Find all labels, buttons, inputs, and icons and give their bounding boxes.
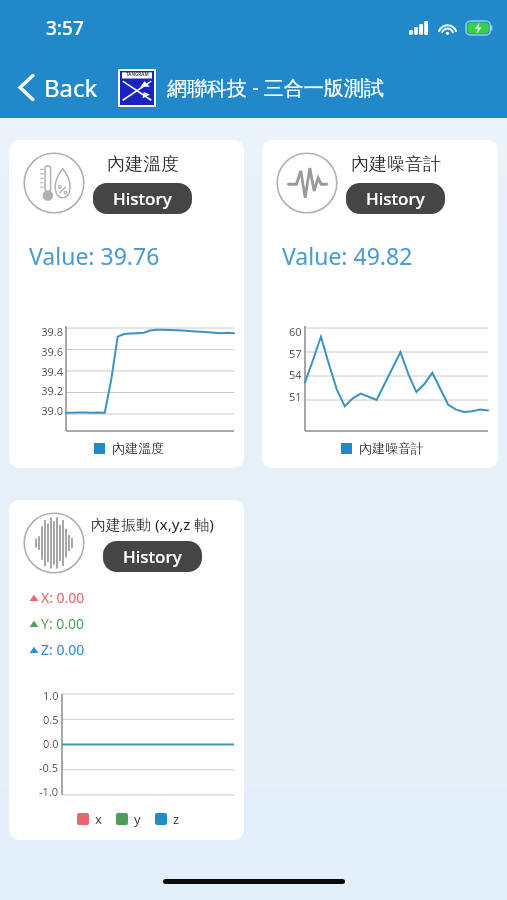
staticText: Back — [44, 71, 98, 104]
staticText: -1.0 — [39, 784, 59, 799]
staticText: 54 — [289, 367, 302, 382]
staticText: TANGRAM — [126, 71, 149, 77]
staticText: History — [123, 545, 182, 568]
staticText: 網聯科技 - 三合一版測試 — [167, 74, 384, 101]
staticText: 內建振動 (x,y,z 軸) — [91, 514, 214, 534]
staticText: 57 — [289, 346, 302, 361]
staticText: -0.5 — [39, 760, 59, 775]
staticText: 3:57 — [46, 15, 84, 41]
button[interactable]: 內建振動 (x,y,z 軸) — [9, 500, 244, 840]
staticText: 39.0 — [41, 403, 63, 418]
staticText: z — [173, 810, 180, 828]
staticText: 內建噪音計 — [351, 153, 441, 176]
button[interactable]: History — [93, 183, 192, 214]
button[interactable]: 內建溫度 — [9, 140, 244, 468]
staticText: Z: 0.00 — [41, 640, 85, 659]
staticText: History — [366, 187, 425, 210]
staticText: 內建噪音計 — [359, 440, 424, 456]
button[interactable]: History — [103, 541, 202, 572]
button[interactable]: History — [346, 183, 445, 214]
staticText: 內建溫度 — [107, 153, 179, 176]
staticText: History — [113, 187, 172, 210]
staticText: y — [134, 810, 141, 828]
staticText: Y: 0.00 — [41, 614, 85, 633]
staticText: 內建溫度 — [112, 440, 164, 456]
staticText: x — [95, 810, 102, 828]
staticText: Value: 49.82 — [282, 240, 413, 271]
staticText: 39.8 — [41, 324, 63, 339]
staticText: 0.5 — [43, 712, 59, 727]
staticText: 0.0 — [43, 736, 59, 751]
button[interactable]: 內建噪音計 — [262, 140, 498, 468]
staticText: 39.4 — [41, 364, 63, 379]
staticText: X: 0.00 — [41, 588, 85, 607]
staticText: 39.6 — [41, 344, 63, 359]
staticText: 60 — [289, 324, 302, 339]
button[interactable]: Back — [14, 67, 102, 108]
staticText: 1.0 — [43, 688, 59, 703]
staticText: 39.2 — [41, 383, 63, 398]
staticText: Value: 39.76 — [29, 240, 160, 271]
staticText: 51 — [289, 389, 302, 404]
